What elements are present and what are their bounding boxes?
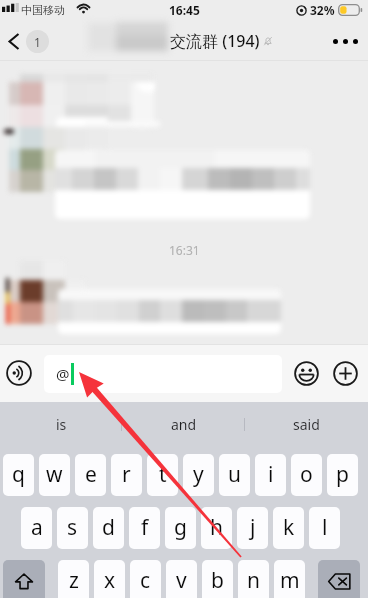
- button[interactable]: t: [147, 454, 178, 496]
- staticText: x: [104, 566, 116, 595]
- staticText: n: [247, 566, 260, 595]
- button[interactable]: Voice input: [3, 357, 35, 389]
- staticText: is: [56, 415, 67, 434]
- button[interactable]: said: [245, 402, 368, 450]
- button[interactable]: d: [93, 507, 124, 549]
- staticText: r: [122, 460, 131, 489]
- staticText: 交流群 (194): [170, 30, 260, 52]
- staticText: u: [228, 460, 241, 489]
- button[interactable]: @: [44, 355, 282, 393]
- button[interactable]: r: [111, 454, 142, 496]
- button[interactable]: i: [255, 454, 286, 496]
- staticText: 1: [34, 34, 41, 50]
- button[interactable]: v: [166, 560, 197, 598]
- button[interactable]: n: [238, 560, 269, 598]
- button[interactable]: k: [273, 507, 304, 549]
- button[interactable]: f: [129, 507, 160, 549]
- staticText: @: [56, 364, 70, 384]
- button[interactable]: o: [291, 454, 322, 496]
- staticText: k: [283, 513, 295, 542]
- button[interactable]: h: [201, 507, 232, 549]
- button[interactable]: j: [237, 507, 268, 549]
- staticText: l: [322, 513, 328, 542]
- button[interactable]: e: [75, 454, 106, 496]
- staticText: d: [102, 513, 115, 542]
- staticText: e: [85, 460, 97, 489]
- staticText: b: [211, 566, 224, 595]
- staticText: z: [69, 566, 79, 595]
- staticText: m: [280, 566, 300, 595]
- button[interactable]: Back: [7, 30, 49, 53]
- button[interactable]: is: [0, 402, 122, 450]
- staticText: 32%: [310, 2, 335, 18]
- button[interactable]: l: [309, 507, 340, 549]
- button[interactable]: More: [330, 358, 360, 388]
- staticText: j: [250, 513, 256, 542]
- staticText: a: [31, 513, 43, 542]
- button[interactable]: w: [39, 454, 70, 496]
- button[interactable]: b: [202, 560, 233, 598]
- staticText: t: [159, 460, 167, 489]
- staticText: q: [12, 460, 25, 489]
- button[interactable]: Backspace: [318, 560, 360, 598]
- button[interactable]: Emoji: [291, 358, 321, 388]
- staticText: c: [140, 566, 151, 595]
- button[interactable]: u: [219, 454, 250, 496]
- staticText: w: [46, 460, 63, 489]
- button[interactable]: a: [21, 507, 52, 549]
- staticText: 中国移动: [21, 3, 65, 17]
- staticText: v: [176, 566, 187, 595]
- staticText: f: [141, 513, 149, 542]
- button[interactable]: c: [130, 560, 161, 598]
- staticText: h: [210, 513, 223, 542]
- button[interactable]: and: [122, 402, 245, 450]
- staticText: said: [293, 415, 320, 434]
- staticText: and: [171, 415, 197, 434]
- button[interactable]: s: [57, 507, 88, 549]
- staticText: y: [193, 460, 204, 489]
- button[interactable]: p: [327, 454, 358, 496]
- button[interactable]: Shift: [3, 560, 45, 598]
- staticText: g: [174, 513, 187, 542]
- staticText: i: [268, 460, 274, 489]
- staticText: s: [67, 513, 78, 542]
- button[interactable]: q: [3, 454, 34, 496]
- staticText: 16:31: [169, 242, 200, 258]
- staticText: 16:45: [169, 2, 200, 18]
- button[interactable]: x: [94, 560, 125, 598]
- button[interactable]: y: [183, 454, 214, 496]
- button[interactable]: z: [58, 560, 89, 598]
- button[interactable]: m: [274, 560, 305, 598]
- staticText: o: [300, 460, 313, 489]
- button[interactable]: g: [165, 507, 196, 549]
- button[interactable]: More options: [322, 22, 368, 61]
- staticText: p: [336, 460, 349, 489]
